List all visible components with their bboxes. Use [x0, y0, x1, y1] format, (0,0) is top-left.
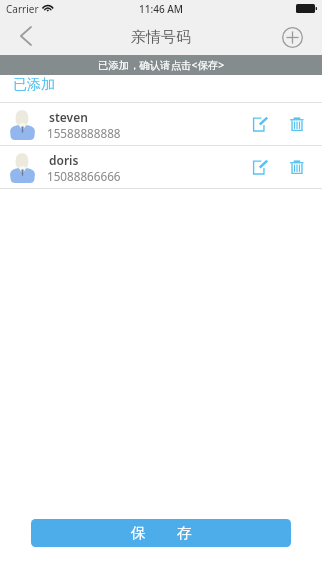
button[interactable]: Delete: [282, 103, 312, 145]
staticText: 存: [177, 524, 192, 543]
staticText: doris: [49, 152, 79, 168]
button[interactable]: doris: [0, 146, 322, 188]
button[interactable]: Edit: [245, 146, 275, 188]
staticText: 15588888888: [47, 125, 121, 141]
staticText: 已添加，确认请点击<保存>: [98, 58, 225, 72]
staticText: 11:46 AM: [139, 2, 183, 16]
button[interactable]: Back: [0, 17, 48, 55]
staticText: 亲情号码: [131, 28, 191, 47]
staticText: Carrier: [6, 2, 39, 16]
button[interactable]: 保: [31, 519, 291, 547]
staticText: steven: [49, 109, 88, 125]
button[interactable]: Edit: [245, 103, 275, 145]
button[interactable]: steven: [0, 103, 322, 145]
staticText: 已添加: [13, 76, 55, 94]
button[interactable]: Add: [274, 17, 322, 55]
button[interactable]: Delete: [282, 146, 312, 188]
staticText: 保: [131, 524, 146, 543]
staticText: 15088866666: [47, 168, 121, 184]
